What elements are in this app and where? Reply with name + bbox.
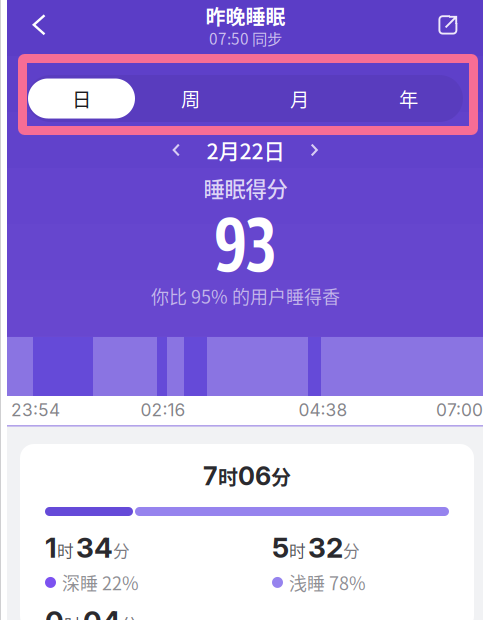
button[interactable]: 日 bbox=[27, 75, 136, 122]
staticText: 02:16 bbox=[140, 399, 185, 420]
staticText: 浅睡 78% bbox=[289, 569, 366, 595]
staticText: 23:54 bbox=[11, 399, 60, 420]
button[interactable]: 周 bbox=[136, 75, 245, 122]
staticText: 时 bbox=[57, 538, 74, 562]
staticText: 时 bbox=[218, 462, 238, 491]
staticText: 分 bbox=[113, 538, 130, 562]
staticText: 日 bbox=[72, 84, 91, 112]
staticText: 分 bbox=[271, 462, 291, 491]
staticText: 周 bbox=[181, 84, 200, 112]
button[interactable]: 年 bbox=[354, 75, 463, 122]
staticText: 93 bbox=[214, 198, 276, 288]
button[interactable]: Previous day bbox=[162, 136, 190, 164]
staticText: 分 bbox=[121, 612, 138, 620]
staticText: 34 bbox=[76, 530, 113, 564]
staticText: 04:38 bbox=[298, 399, 347, 420]
staticText: 04 bbox=[83, 604, 121, 620]
staticText: 你比 95% 的用户睡得香 bbox=[151, 283, 340, 309]
button[interactable]: Next day bbox=[300, 136, 328, 164]
button[interactable]: Share bbox=[426, 3, 470, 47]
button[interactable]: Back bbox=[16, 2, 62, 48]
button[interactable]: 月 bbox=[245, 75, 354, 122]
staticText: 0 bbox=[45, 604, 64, 620]
staticText: 分 bbox=[343, 538, 360, 562]
staticText: 07:50 同步 bbox=[209, 27, 282, 49]
staticText: 2月22日 bbox=[206, 135, 284, 165]
staticText: 06 bbox=[238, 461, 271, 491]
staticText: 时 bbox=[64, 612, 81, 620]
staticText: 深睡 22% bbox=[62, 569, 139, 595]
staticText: 5 bbox=[272, 530, 289, 564]
staticText: 昨晚睡眠 bbox=[205, 1, 285, 30]
staticText: 睡眠得分 bbox=[203, 173, 287, 203]
staticText: 7 bbox=[203, 461, 218, 491]
staticText: 1 bbox=[45, 530, 57, 564]
staticText: 07:00 bbox=[436, 399, 483, 420]
staticText: 月 bbox=[290, 84, 309, 112]
staticText: 年 bbox=[399, 84, 418, 112]
staticText: 时 bbox=[289, 538, 306, 562]
staticText: 32 bbox=[308, 530, 343, 564]
